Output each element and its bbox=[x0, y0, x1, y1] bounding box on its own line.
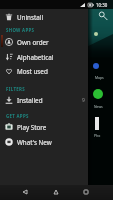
button[interactable]: Uninstall bbox=[0, 10, 88, 24]
staticText: News bbox=[94, 104, 103, 109]
button[interactable]: Most used bbox=[0, 64, 88, 78]
button[interactable]: Installed bbox=[0, 93, 88, 107]
button[interactable]: Search bbox=[98, 11, 107, 20]
button[interactable]: Play Store bbox=[0, 120, 88, 134]
staticText: Alphabetical bbox=[17, 53, 54, 62]
staticText: Uninstall bbox=[17, 13, 44, 22]
button[interactable]: Recent apps bbox=[79, 184, 93, 198]
staticText: Most used bbox=[17, 67, 48, 76]
staticText: FILTERS bbox=[6, 86, 25, 92]
staticText: Maps bbox=[95, 75, 104, 80]
button[interactable]: What's New bbox=[0, 135, 88, 149]
button[interactable]: Alphabetical bbox=[0, 50, 88, 64]
staticText: Play Store bbox=[17, 123, 47, 132]
staticText: 9 bbox=[82, 97, 85, 104]
staticText: Installed bbox=[17, 96, 43, 105]
button[interactable]: Home bbox=[49, 184, 63, 198]
staticText: SHOW APPS bbox=[6, 27, 35, 33]
staticText: GET APPS bbox=[6, 113, 29, 119]
staticText: Pho bbox=[94, 133, 101, 138]
staticText: What's New bbox=[17, 138, 52, 147]
button[interactable]: Back bbox=[18, 184, 32, 198]
staticText: 10:30 bbox=[96, 2, 108, 8]
staticText: Own order bbox=[17, 38, 49, 47]
button[interactable]: Own order bbox=[0, 35, 88, 49]
